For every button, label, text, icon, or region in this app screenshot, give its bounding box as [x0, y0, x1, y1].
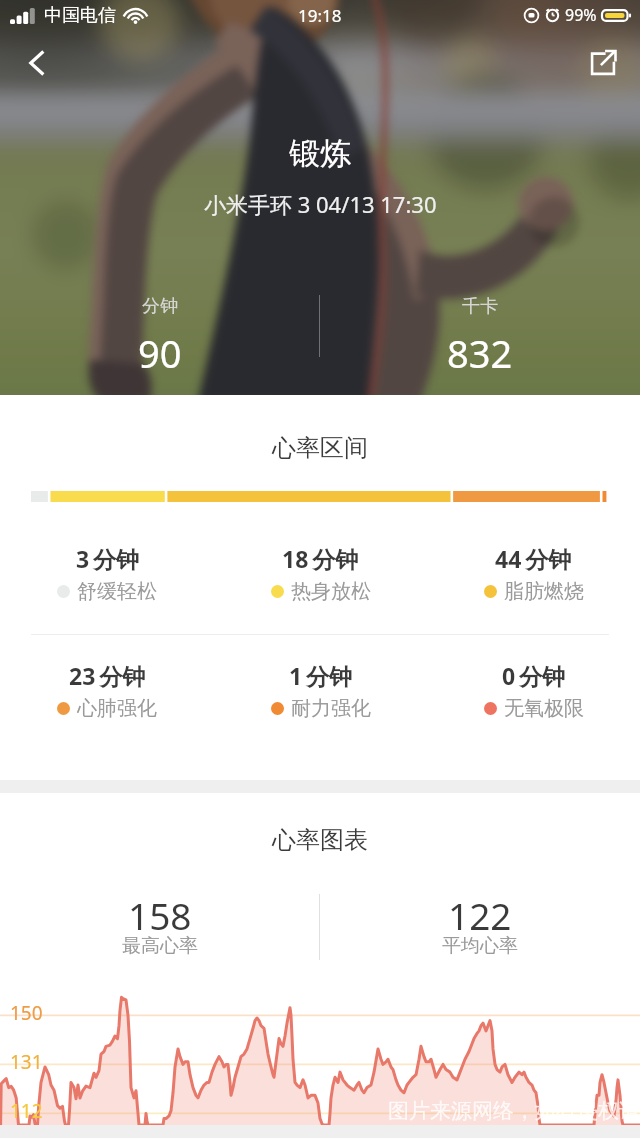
staticText: 千卡 — [462, 295, 498, 318]
staticText: 最高心率 — [122, 934, 198, 958]
staticText: 122 — [448, 890, 512, 940]
staticText: 锻炼 — [289, 134, 351, 173]
staticText: 158 — [128, 890, 192, 940]
staticText: 3 分钟 — [76, 543, 139, 574]
staticText: 99% — [565, 4, 597, 26]
staticText: 18 分钟 — [282, 543, 359, 574]
staticText: 150 — [10, 1000, 43, 1026]
staticText: 平均心率 — [442, 934, 518, 958]
staticText: 热身放松 — [291, 579, 371, 604]
staticText: 112 — [10, 1098, 43, 1124]
staticText: 44 分钟 — [495, 543, 572, 574]
staticText: 心肺强化 — [77, 696, 157, 721]
staticText: 0 分钟 — [502, 660, 565, 691]
button[interactable]: Back — [12, 38, 62, 88]
staticText: 无氧极限 — [504, 696, 584, 721]
staticText: 832 — [447, 327, 513, 379]
staticText: 131 — [10, 1049, 43, 1075]
staticText: 耐力强化 — [291, 696, 371, 721]
staticText: 中国电信 — [44, 4, 116, 27]
staticText: 90 — [138, 327, 182, 379]
staticText: 舒缓轻松 — [77, 579, 157, 604]
staticText: 心率图表 — [0, 825, 640, 855]
staticText: 19:18 — [298, 4, 342, 27]
staticText: 小米手环 3 04/13 17:30 — [204, 189, 437, 219]
staticText: 分钟 — [142, 295, 178, 318]
button[interactable]: Share — [578, 38, 628, 88]
staticText: 心率区间 — [0, 433, 640, 463]
staticText: 1 分钟 — [289, 660, 352, 691]
staticText: 图片来源网络，如有侵权请联系删除 — [388, 1098, 640, 1124]
staticText: 23 分钟 — [69, 660, 146, 691]
staticText: 脂肪燃烧 — [504, 579, 584, 604]
